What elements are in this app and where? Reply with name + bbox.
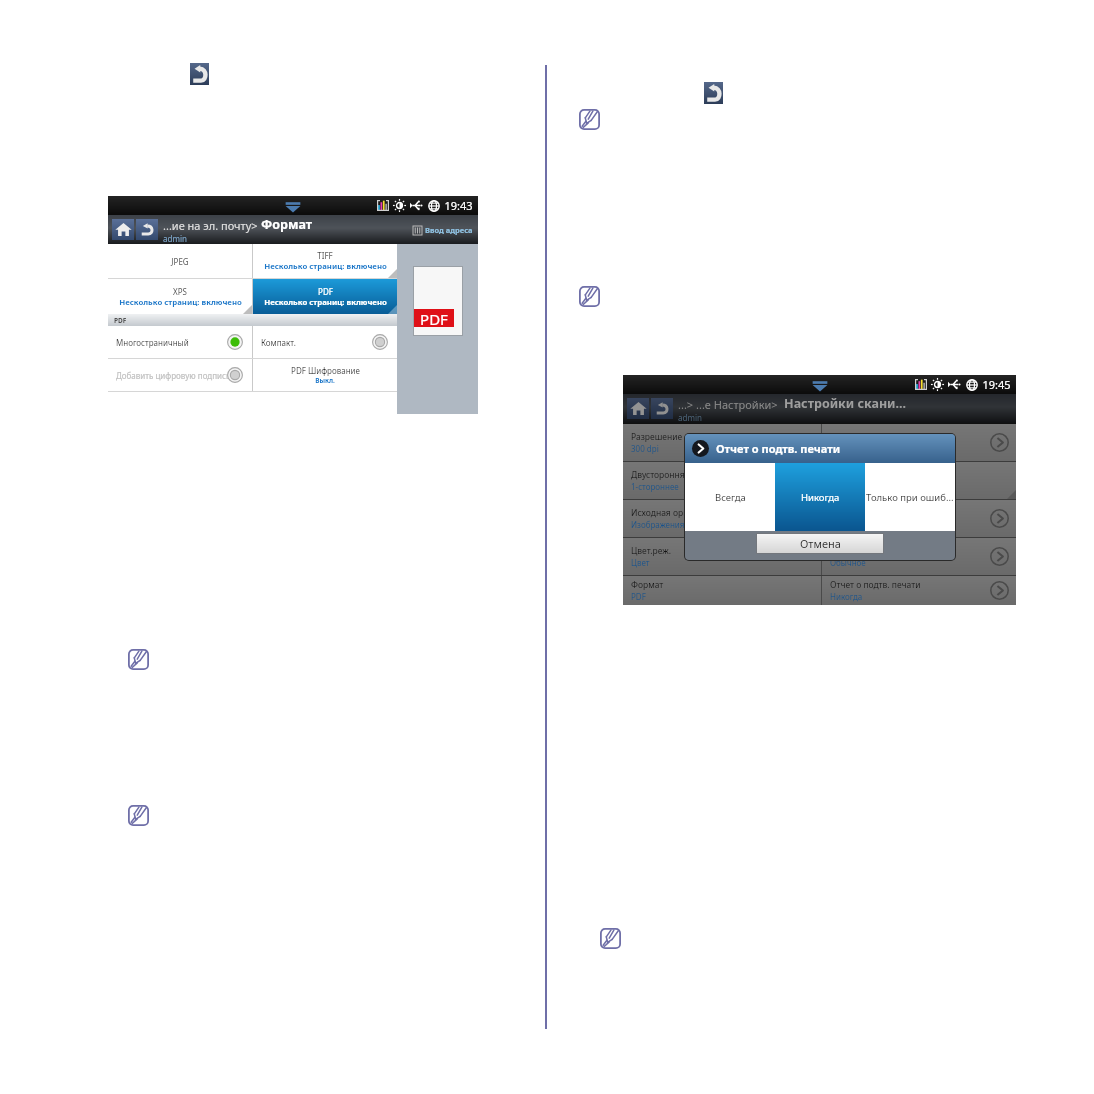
staticText: Выкл.	[315, 376, 335, 385]
staticText: Многостраничный	[116, 337, 189, 348]
staticText: Двусторонняя печать	[631, 469, 720, 481]
staticText: Никогда	[801, 491, 840, 504]
staticText: 300 dpi	[631, 443, 659, 454]
staticText: Компакт.	[261, 337, 296, 348]
button[interactable]: Ввод адреса	[413, 225, 473, 235]
button[interactable]	[822, 462, 1016, 499]
staticText: PDF	[420, 309, 448, 327]
staticText: Никогда	[830, 591, 863, 602]
button[interactable]: Home	[112, 219, 134, 240]
staticText: admin	[678, 412, 702, 423]
button[interactable]: Качество	[822, 538, 1016, 575]
staticText: Ввод адреса	[425, 225, 473, 235]
staticText: PDF	[114, 316, 127, 325]
button[interactable]	[822, 424, 1016, 461]
staticText: Разрешение	[631, 431, 683, 443]
staticText: PDF	[631, 591, 646, 602]
button[interactable]: Компакт.	[253, 326, 397, 358]
button[interactable]: XPS	[108, 279, 252, 314]
staticText: 19:45	[982, 377, 1011, 392]
staticText: XPS	[173, 286, 187, 297]
button[interactable]: Добавить цифровую подпись	[108, 359, 252, 391]
staticText: Обычное	[830, 557, 866, 568]
button[interactable]: Только при ошиб...	[865, 463, 955, 531]
staticText: ...> ...е Настройки>	[678, 397, 784, 412]
staticText: PDF	[318, 286, 333, 297]
staticText: Несколько страниц: включено	[119, 297, 242, 308]
button[interactable]: Всегда	[685, 463, 775, 531]
staticText: admin	[163, 233, 187, 244]
staticText: PDF Шифрование	[291, 365, 360, 376]
button[interactable]: PDF Шифрование	[253, 359, 397, 391]
staticText: 19:43	[444, 198, 473, 213]
staticText: Несколько страниц: включено	[264, 297, 387, 308]
staticText: TIFF	[317, 250, 333, 261]
button[interactable]: Формат	[623, 576, 821, 605]
button[interactable]: Исходная ориент.	[623, 500, 821, 537]
staticText: 1-стороннее	[631, 481, 679, 492]
staticText: ...ие на эл. почту>	[163, 218, 261, 233]
staticText: Цвет.реж.	[631, 545, 671, 557]
button[interactable]: Отчет о подтв. печати	[822, 576, 1016, 605]
staticText: Отчет о подтв. печати	[716, 441, 841, 456]
button[interactable]: Отмена	[756, 533, 884, 554]
staticText: Формат	[631, 579, 664, 591]
staticText: Изображения	[631, 519, 685, 530]
button[interactable]	[822, 500, 1016, 537]
staticText: Только при ошиб...	[866, 491, 954, 504]
staticText: Цвет	[631, 557, 650, 568]
staticText: Добавить цифровую подпись	[116, 370, 231, 381]
staticText: Несколько страниц: включено	[264, 261, 387, 272]
staticText: JPEG	[171, 256, 189, 267]
button[interactable]: Никогда	[775, 463, 865, 531]
button[interactable]: Back	[651, 398, 673, 419]
button[interactable]: PDF	[253, 279, 397, 314]
staticText: Исходная ориент.	[631, 507, 705, 519]
staticText: Качество	[830, 545, 868, 557]
staticText: Настройки скани...	[784, 395, 907, 412]
staticText: Отмена	[800, 536, 841, 551]
button[interactable]: Back	[190, 63, 209, 85]
button[interactable]: Back	[136, 219, 158, 240]
staticText: Формат	[261, 216, 313, 233]
button[interactable]: Цвет.реж.	[623, 538, 821, 575]
button[interactable]: Back	[704, 82, 723, 104]
button[interactable]: Многостраничный	[108, 326, 252, 358]
button[interactable]: TIFF	[253, 244, 397, 278]
button[interactable]: JPEG	[108, 244, 252, 278]
button[interactable]: Двусторонняя печать	[623, 462, 821, 499]
staticText: Отчет о подтв. печати	[830, 579, 921, 591]
button[interactable]: Home	[627, 398, 649, 419]
button[interactable]: Разрешение	[623, 424, 821, 461]
staticText: Всегда	[715, 491, 746, 504]
